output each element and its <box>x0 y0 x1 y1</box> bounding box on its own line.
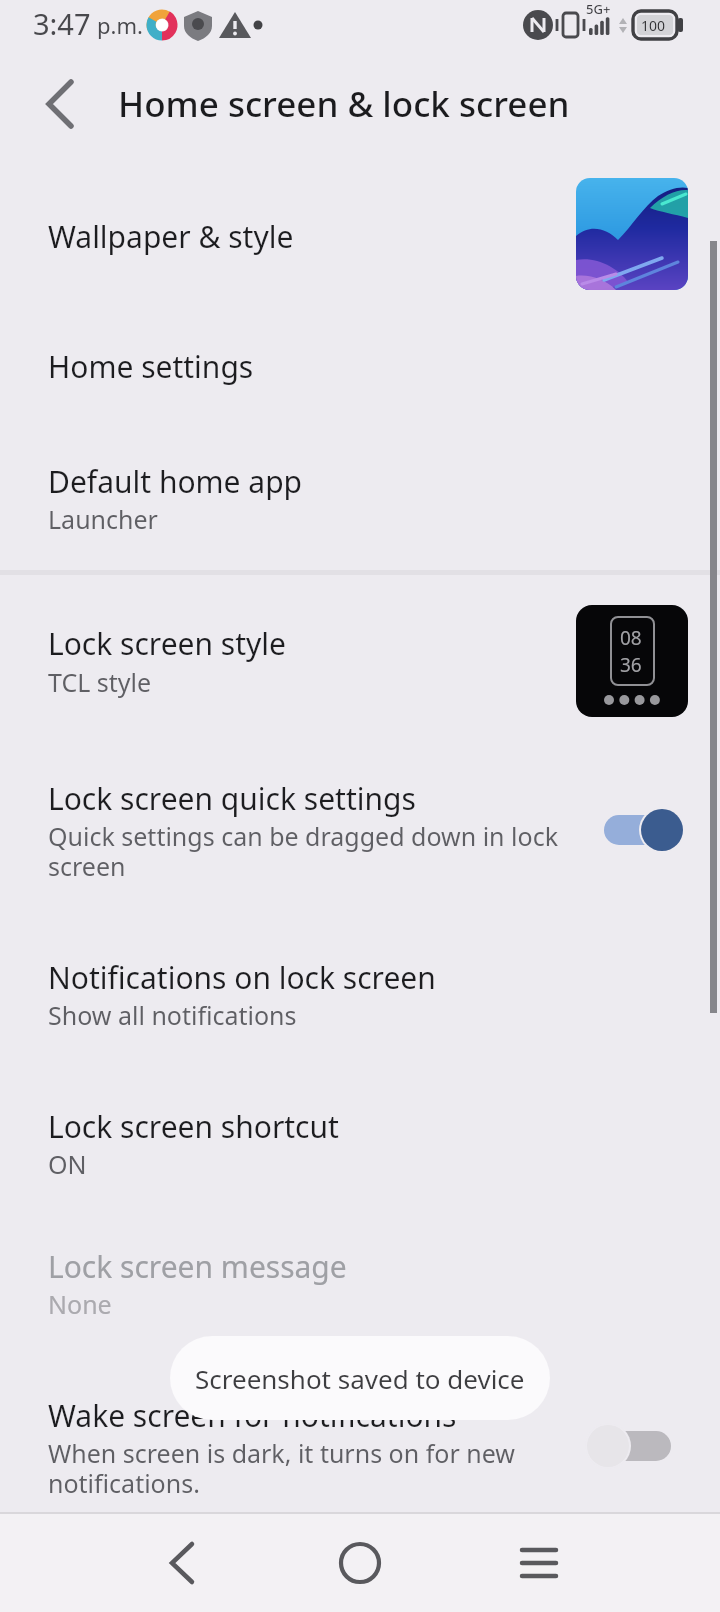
staticText: TCL style <box>48 665 152 699</box>
staticText: Lock screen quick settings <box>48 778 416 819</box>
button[interactable] <box>571 1423 697 1469</box>
staticText: Screenshot saved to device <box>195 1361 525 1396</box>
staticText: Lock screen message <box>48 1246 347 1287</box>
staticText: None <box>48 1287 112 1321</box>
staticText: Lock screen style <box>48 623 286 664</box>
button[interactable]: Lock screen style <box>0 605 720 717</box>
button[interactable] <box>479 1512 599 1612</box>
staticText: 100 <box>641 16 666 35</box>
button[interactable]: Lock screen message <box>0 1228 720 1342</box>
button[interactable] <box>119 1512 239 1612</box>
staticText: Launcher <box>48 502 158 536</box>
button[interactable]: Lock screen shortcut <box>0 1088 720 1202</box>
button[interactable] <box>578 807 704 853</box>
staticText: ON <box>48 1147 87 1181</box>
button[interactable]: Lock screen quick settings <box>0 760 720 900</box>
staticText: Quick settings can be dragged down in lo… <box>48 819 558 883</box>
staticText: Notifications on lock screen <box>48 957 436 998</box>
staticText: 5G+ <box>586 0 611 18</box>
button[interactable]: Wallpaper & style <box>0 178 720 290</box>
button[interactable]: Home settings <box>0 330 720 406</box>
staticText: Show all notifications <box>48 998 297 1032</box>
staticText: Default home app <box>48 461 303 502</box>
staticText: Wake screen for notifications <box>48 1395 457 1436</box>
button[interactable]: Wake screen for notifications <box>0 1378 720 1502</box>
staticText: 3:47 <box>33 4 91 43</box>
button[interactable] <box>300 1512 420 1612</box>
staticText: When screen is dark, it turns on for new… <box>48 1436 515 1500</box>
staticText: Lock screen shortcut <box>48 1106 339 1147</box>
button[interactable]: Default home app <box>0 443 720 557</box>
staticText: p.m. <box>97 10 143 40</box>
button[interactable] <box>24 72 88 136</box>
staticText: Home settings <box>48 346 254 387</box>
button[interactable]: Notifications on lock screen <box>0 940 720 1053</box>
staticText: Wallpaper & style <box>48 216 294 257</box>
staticText: 08 <box>620 625 642 651</box>
staticText: Home screen & lock screen <box>118 80 570 128</box>
staticText: 36 <box>620 652 642 678</box>
